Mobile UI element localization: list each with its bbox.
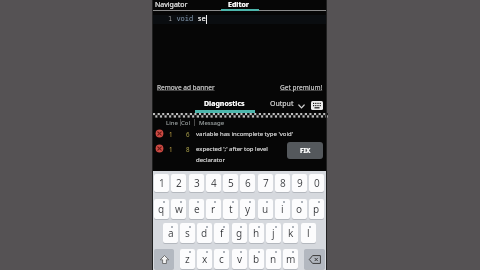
button[interactable]: l <box>301 223 316 243</box>
staticText: 5 <box>228 176 234 190</box>
staticText: m <box>286 252 296 266</box>
staticText: 3 <box>194 176 200 190</box>
button[interactable]: Navigator <box>155 0 215 10</box>
button[interactable]: r <box>206 199 221 219</box>
button[interactable]: Remove ad banner <box>157 83 237 92</box>
button[interactable] <box>153 141 326 165</box>
staticText: 1 <box>169 130 173 138</box>
button[interactable] <box>153 128 326 140</box>
staticText: variable has incomplete type 'void' <box>196 130 294 138</box>
button[interactable]: o <box>292 199 307 219</box>
staticText: 1 void se <box>168 14 206 24</box>
button[interactable]: 3 <box>189 174 204 192</box>
staticText: c <box>219 252 224 266</box>
button[interactable]: c <box>214 249 229 269</box>
staticText: w <box>175 202 183 216</box>
staticText: s <box>185 226 190 240</box>
button[interactable]: b <box>249 249 264 269</box>
staticText: r <box>211 202 216 216</box>
button[interactable]: z <box>180 249 195 269</box>
button[interactable]: 4 <box>206 174 221 192</box>
staticText: Line <box>166 119 178 127</box>
button[interactable]: u <box>258 199 273 219</box>
staticText: u <box>262 202 269 216</box>
staticText: z <box>185 252 190 266</box>
staticText: 0 <box>314 176 320 190</box>
button[interactable]: 0 <box>309 174 324 192</box>
button[interactable]: q <box>154 199 169 219</box>
staticText: j <box>272 226 275 240</box>
staticText: expected ';' after top level <box>196 145 268 153</box>
staticText: a <box>168 226 174 240</box>
button[interactable]: g <box>232 223 247 243</box>
staticText: t <box>229 202 233 216</box>
button[interactable]: Get premium! <box>253 83 323 92</box>
button[interactable]: v <box>232 249 247 269</box>
staticText: p <box>313 202 320 216</box>
staticText: l <box>307 226 310 240</box>
button[interactable]: f <box>214 223 229 243</box>
staticText: y <box>245 202 251 216</box>
button[interactable]: j <box>266 223 281 243</box>
button[interactable]: x <box>197 249 212 269</box>
button[interactable]: h <box>249 223 264 243</box>
button[interactable]: m <box>283 249 298 269</box>
button[interactable]: 6 <box>240 174 255 192</box>
button[interactable]: 5 <box>223 174 238 192</box>
button[interactable]: y <box>240 199 255 219</box>
staticText: v <box>237 252 243 266</box>
button[interactable] <box>154 249 174 269</box>
staticText: q <box>158 202 165 216</box>
button[interactable]: Diagnostics <box>195 96 253 111</box>
staticText: Col <box>181 119 190 127</box>
staticText: 1 <box>169 145 173 153</box>
button[interactable]: t <box>223 199 238 219</box>
staticText: 2 <box>176 176 182 190</box>
staticText: 4 <box>211 176 217 190</box>
button[interactable]: Output <box>265 96 299 111</box>
staticText: 1 <box>159 176 165 190</box>
staticText: Message <box>199 119 225 127</box>
staticText: o <box>296 202 303 216</box>
staticText: Editor <box>228 0 249 10</box>
button[interactable] <box>311 101 323 110</box>
staticText: 6 <box>186 130 190 138</box>
button[interactable]: e <box>189 199 204 219</box>
staticText: Remove ad banner <box>157 83 215 92</box>
staticText: f <box>220 226 224 240</box>
button[interactable]: k <box>283 223 298 243</box>
staticText: i <box>281 202 284 216</box>
button[interactable]: n <box>266 249 281 269</box>
button[interactable]: p <box>309 199 324 219</box>
staticText: 6 <box>245 176 251 190</box>
staticText: g <box>236 226 243 240</box>
button[interactable]: 2 <box>171 174 186 192</box>
button[interactable]: i <box>275 199 290 219</box>
button[interactable]: 1 <box>154 174 169 192</box>
staticText: k <box>288 226 294 240</box>
button[interactable]: 8 <box>275 174 290 192</box>
staticText: Diagnostics <box>204 99 245 109</box>
button[interactable]: w <box>171 199 186 219</box>
staticText: x <box>202 252 208 266</box>
staticText: h <box>253 226 260 240</box>
staticText: Output <box>270 99 294 109</box>
staticText: 8 <box>186 145 190 153</box>
button[interactable]: s <box>180 223 195 243</box>
button[interactable]: FIX <box>287 142 323 159</box>
staticText: 9 <box>297 176 303 190</box>
staticText: b <box>253 252 260 266</box>
button[interactable]: d <box>197 223 212 243</box>
staticText: Navigator <box>155 0 188 10</box>
button[interactable]: 7 <box>258 174 273 192</box>
staticText: d <box>201 226 208 240</box>
staticText: 7 <box>263 176 269 190</box>
button[interactable] <box>304 249 325 269</box>
button[interactable]: Editor <box>218 0 259 10</box>
button[interactable]: a <box>163 223 178 243</box>
staticText: Get premium! <box>280 83 323 92</box>
staticText: 8 <box>280 176 286 190</box>
button[interactable]: 9 <box>292 174 307 192</box>
staticText: FIX <box>300 146 311 155</box>
staticText: declarator <box>196 156 225 164</box>
